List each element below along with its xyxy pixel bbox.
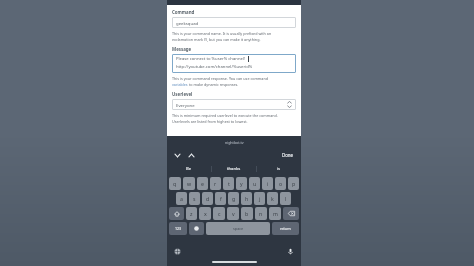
staticText: Command bbox=[172, 9, 195, 15]
button[interactable]: o bbox=[275, 177, 286, 190]
button[interactable]: Shift bbox=[169, 207, 184, 220]
staticText: a bbox=[180, 195, 183, 202]
button[interactable]: Dictation bbox=[284, 245, 296, 257]
staticText: p bbox=[292, 180, 296, 187]
button[interactable]: c bbox=[213, 207, 225, 220]
button[interactable]: return bbox=[272, 222, 299, 235]
staticText: k bbox=[271, 195, 274, 202]
staticText: thanks bbox=[227, 166, 241, 172]
button[interactable]: n bbox=[255, 207, 267, 220]
staticText: variables bbox=[172, 82, 188, 87]
staticText: Userlevels are listed from highest to lo… bbox=[172, 119, 248, 124]
staticText: Please connect to %user% channel! bbox=[176, 56, 246, 62]
button[interactable]: space bbox=[206, 222, 270, 235]
staticText: n bbox=[259, 210, 263, 217]
staticText: c bbox=[218, 210, 221, 217]
staticText: Message bbox=[172, 46, 192, 52]
button[interactable]: w bbox=[183, 177, 195, 190]
staticText: l bbox=[285, 195, 287, 202]
button[interactable]: r bbox=[210, 177, 221, 190]
button[interactable]: Everyone bbox=[172, 99, 296, 110]
staticText: to make dynamic responses. bbox=[188, 82, 239, 87]
button[interactable]: s bbox=[189, 192, 200, 205]
staticText: return bbox=[280, 226, 291, 231]
staticText: geeksquad bbox=[176, 20, 199, 26]
button[interactable]: Change keyboard bbox=[171, 245, 183, 257]
staticText: This is your command response. You can u… bbox=[172, 76, 268, 81]
staticText: q bbox=[173, 180, 177, 187]
button[interactable]: a bbox=[176, 192, 187, 205]
staticText: y bbox=[240, 180, 243, 187]
button[interactable]: q bbox=[169, 177, 181, 190]
button[interactable]: l bbox=[280, 192, 291, 205]
staticText: z bbox=[190, 210, 193, 217]
staticText: This is minimum required userlevel to ex… bbox=[172, 113, 278, 118]
button[interactable]: u bbox=[249, 177, 260, 190]
staticText: Done bbox=[282, 152, 294, 158]
button[interactable]: i bbox=[262, 177, 273, 190]
button[interactable]: thanks bbox=[212, 162, 256, 175]
button[interactable]: h bbox=[241, 192, 252, 205]
button[interactable]: k bbox=[267, 192, 278, 205]
staticText: m bbox=[273, 210, 278, 217]
button[interactable]: Backspace bbox=[283, 207, 299, 220]
button[interactable]: t bbox=[223, 177, 234, 190]
staticText: o bbox=[279, 180, 283, 187]
staticText: j bbox=[259, 195, 261, 202]
button[interactable]: 123 bbox=[169, 222, 187, 235]
staticText: http://youtube.com/channel/%userid% bbox=[176, 64, 253, 70]
button[interactable]: Next field bbox=[186, 150, 197, 161]
staticText: x bbox=[204, 210, 207, 217]
staticText: 123 bbox=[175, 226, 182, 231]
button[interactable]: z bbox=[186, 207, 197, 220]
staticText: e bbox=[201, 180, 204, 187]
button[interactable]: Be bbox=[167, 162, 211, 175]
staticText: b bbox=[245, 210, 249, 217]
staticText: Userlevel bbox=[172, 91, 193, 97]
button[interactable]: Please connect to %user% channel! bbox=[172, 54, 296, 73]
staticText: s bbox=[193, 195, 196, 202]
staticText: i bbox=[267, 180, 269, 187]
button[interactable]: b bbox=[241, 207, 253, 220]
button[interactable]: e bbox=[197, 177, 208, 190]
staticText: Be bbox=[186, 166, 192, 172]
staticText: r bbox=[214, 180, 217, 187]
button[interactable]: d bbox=[202, 192, 213, 205]
button[interactable]: Previous field bbox=[172, 150, 183, 161]
staticText: t bbox=[228, 180, 230, 187]
staticText: Everyone bbox=[176, 102, 195, 108]
staticText: f bbox=[220, 195, 222, 202]
staticText: h bbox=[245, 195, 249, 202]
staticText: g bbox=[232, 195, 236, 202]
staticText: u bbox=[253, 180, 257, 187]
button[interactable]: v bbox=[227, 207, 239, 220]
staticText: nightbot.tv bbox=[225, 140, 244, 145]
button[interactable]: m bbox=[269, 207, 281, 220]
button[interactable]: Emoji bbox=[189, 222, 204, 235]
button[interactable]: x bbox=[199, 207, 211, 220]
staticText: space bbox=[233, 226, 244, 231]
button[interactable]: g bbox=[228, 192, 239, 205]
staticText: is bbox=[277, 166, 281, 172]
button[interactable]: p bbox=[288, 177, 299, 190]
staticText: This is your command name. It is usually… bbox=[172, 31, 272, 36]
button[interactable]: f bbox=[215, 192, 226, 205]
staticText: d bbox=[206, 195, 210, 202]
staticText: v bbox=[232, 210, 235, 217]
staticText: exclamation mark (!), but you can make i… bbox=[172, 37, 261, 42]
button[interactable]: geeksquad bbox=[172, 17, 296, 28]
button[interactable]: is bbox=[257, 162, 301, 175]
button[interactable]: Done bbox=[280, 151, 296, 159]
button[interactable]: j bbox=[254, 192, 265, 205]
button[interactable]: y bbox=[236, 177, 247, 190]
staticText: w bbox=[187, 180, 192, 187]
